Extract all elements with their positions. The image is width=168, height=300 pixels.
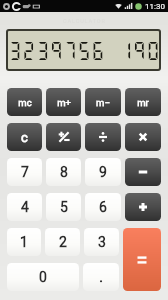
button[interactable]: Multiply <box>125 123 161 151</box>
button[interactable]: 4 <box>7 193 42 221</box>
staticText: m− <box>96 97 110 108</box>
staticText: 9 <box>99 164 107 180</box>
button[interactable]: Equals <box>123 228 161 291</box>
button[interactable]: . <box>83 263 119 291</box>
button[interactable]: 9 <box>85 158 121 186</box>
staticText: 11:30 <box>145 2 165 11</box>
button[interactable]: 1 <box>7 228 41 256</box>
staticText: 5 <box>60 199 68 215</box>
staticText: mr <box>137 97 149 108</box>
staticText: 6 <box>99 199 107 215</box>
button[interactable]: Minus <box>125 158 161 186</box>
button[interactable]: mc <box>7 88 42 116</box>
staticText: . <box>99 269 103 285</box>
button[interactable]: Divide <box>85 123 121 151</box>
button[interactable]: c <box>7 123 42 151</box>
button[interactable]: m+ <box>46 88 81 116</box>
button[interactable]: mr <box>125 88 161 116</box>
staticText: 3 <box>98 234 106 250</box>
button[interactable]: 0 <box>7 263 79 291</box>
staticText: 2 <box>59 234 67 250</box>
button[interactable]: 7 <box>7 158 42 186</box>
staticText: 0 <box>39 269 47 285</box>
button[interactable]: Plus minus <box>46 123 81 151</box>
staticText: 3239756 190 <box>8 39 159 61</box>
button[interactable]: 5 <box>46 193 81 221</box>
staticText: c <box>21 130 28 145</box>
button[interactable]: 3 <box>84 228 119 256</box>
staticText: 1 <box>20 234 28 250</box>
staticText: m+ <box>57 97 71 108</box>
staticText: mc <box>18 97 32 108</box>
button[interactable]: 8 <box>46 158 81 186</box>
button[interactable]: Plus <box>125 193 161 221</box>
staticText: 8 <box>60 164 68 180</box>
button[interactable]: 6 <box>85 193 121 221</box>
staticText: 4 <box>21 199 29 215</box>
button[interactable]: m− <box>85 88 121 116</box>
staticText: 7 <box>21 164 29 180</box>
button[interactable]: 2 <box>45 228 80 256</box>
